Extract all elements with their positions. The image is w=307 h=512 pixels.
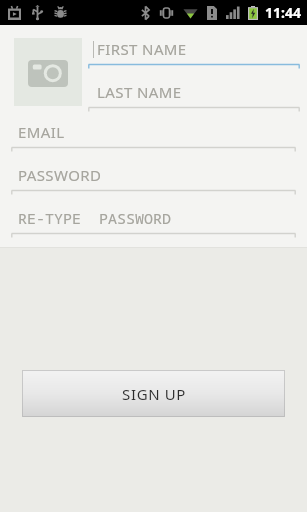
staticText: PASSWORD <box>18 165 102 185</box>
button[interactable]: FIRST NAME <box>88 34 300 69</box>
staticText: SIGN UP <box>122 384 186 404</box>
button[interactable]: Add profile photo <box>14 38 82 106</box>
button[interactable]: PASSWORD <box>11 160 296 195</box>
button[interactable]: RE-TYPE PASSWORD <box>11 203 296 238</box>
button[interactable]: SIGN UP <box>22 370 285 417</box>
staticText: LAST NAME <box>97 82 182 102</box>
staticText: FIRST NAME <box>97 39 187 59</box>
button[interactable]: LAST NAME <box>88 77 300 109</box>
staticText: 11:44 <box>265 3 301 22</box>
button[interactable]: EMAIL <box>11 117 296 152</box>
staticText: EMAIL <box>18 122 65 142</box>
staticText: RE-TYPE PASSWORD <box>18 208 172 228</box>
